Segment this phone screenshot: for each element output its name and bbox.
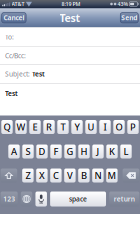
staticText: B bbox=[81, 169, 87, 182]
button[interactable]: G bbox=[64, 144, 76, 158]
staticText: G bbox=[66, 145, 73, 158]
staticText: AT&T bbox=[12, 0, 25, 8]
staticText: A bbox=[11, 145, 17, 158]
staticText: 123 bbox=[3, 195, 15, 203]
button[interactable]: N bbox=[92, 168, 104, 182]
staticText: Send bbox=[121, 13, 137, 22]
button[interactable]: Delete bbox=[123, 168, 139, 182]
staticText: Cc/Bcc: bbox=[5, 51, 26, 60]
staticText: 43% bbox=[117, 0, 128, 8]
staticText: P bbox=[130, 121, 136, 133]
button[interactable]: O bbox=[113, 120, 125, 134]
staticText: N bbox=[94, 169, 101, 182]
button[interactable]: return bbox=[109, 191, 139, 206]
button[interactable]: L bbox=[120, 144, 132, 158]
staticText: Test bbox=[5, 89, 18, 98]
staticText: V bbox=[67, 169, 73, 182]
staticText: Test bbox=[30, 70, 45, 78]
button[interactable]: K bbox=[106, 144, 118, 158]
button[interactable]: V bbox=[64, 168, 76, 182]
staticText: O bbox=[115, 121, 122, 133]
staticText: Subject: bbox=[5, 70, 30, 78]
staticText: H bbox=[80, 145, 87, 158]
button[interactable]: A bbox=[8, 144, 20, 158]
button[interactable]: E bbox=[29, 120, 41, 134]
staticText: W bbox=[16, 121, 25, 133]
staticText: J bbox=[96, 145, 99, 158]
button[interactable]: B bbox=[78, 168, 90, 182]
button[interactable]: To: bbox=[0, 27, 140, 47]
button[interactable]: Send bbox=[120, 13, 138, 23]
staticText: Test bbox=[59, 11, 80, 25]
button[interactable]: M bbox=[106, 168, 118, 182]
button[interactable]: H bbox=[78, 144, 90, 158]
button[interactable]: Cancel bbox=[2, 13, 26, 23]
button[interactable]: P bbox=[127, 120, 139, 134]
button[interactable]: space bbox=[50, 191, 106, 206]
button[interactable]: Shift bbox=[1, 168, 17, 182]
button[interactable]: C bbox=[50, 168, 62, 182]
button[interactable]: T bbox=[57, 120, 69, 134]
staticText: Q bbox=[3, 121, 10, 133]
staticText: return bbox=[114, 195, 135, 203]
button[interactable]: U bbox=[85, 120, 97, 134]
button[interactable]: X bbox=[36, 168, 48, 182]
staticText: U bbox=[87, 121, 94, 133]
button[interactable]: S bbox=[22, 144, 34, 158]
staticText: Cancel bbox=[3, 13, 24, 22]
button[interactable]: Cc/Bcc: bbox=[0, 47, 140, 65]
button[interactable]: Y bbox=[71, 120, 83, 134]
staticText: T bbox=[60, 121, 65, 133]
staticText: To: bbox=[5, 32, 14, 41]
button[interactable]: D bbox=[36, 144, 48, 158]
button[interactable]: W bbox=[15, 120, 27, 134]
staticText: Z bbox=[25, 169, 30, 182]
button[interactable]: Q bbox=[1, 120, 13, 134]
staticText: L bbox=[123, 145, 128, 158]
staticText: C bbox=[53, 169, 59, 182]
staticText: X bbox=[39, 169, 45, 182]
staticText: space bbox=[69, 195, 87, 203]
button[interactable]: Switch keyboard bbox=[21, 191, 32, 206]
staticText: F bbox=[53, 145, 58, 158]
staticText: M bbox=[107, 169, 116, 182]
staticText: R bbox=[46, 121, 52, 133]
button[interactable]: Subject: bbox=[0, 65, 140, 83]
staticText: S bbox=[25, 145, 30, 158]
staticText: D bbox=[38, 145, 45, 158]
button[interactable]: 123 bbox=[1, 191, 18, 206]
button[interactable]: J bbox=[92, 144, 104, 158]
staticText: K bbox=[109, 145, 115, 158]
staticText: E bbox=[32, 121, 37, 133]
button[interactable]: R bbox=[43, 120, 55, 134]
staticText: Y bbox=[74, 121, 79, 133]
button[interactable]: I bbox=[99, 120, 111, 134]
button[interactable]: Z bbox=[22, 168, 34, 182]
button[interactable]: Dictation bbox=[35, 191, 47, 206]
button[interactable]: F bbox=[50, 144, 62, 158]
staticText: 8:19 PM bbox=[62, 0, 81, 8]
staticText: I bbox=[103, 121, 106, 133]
